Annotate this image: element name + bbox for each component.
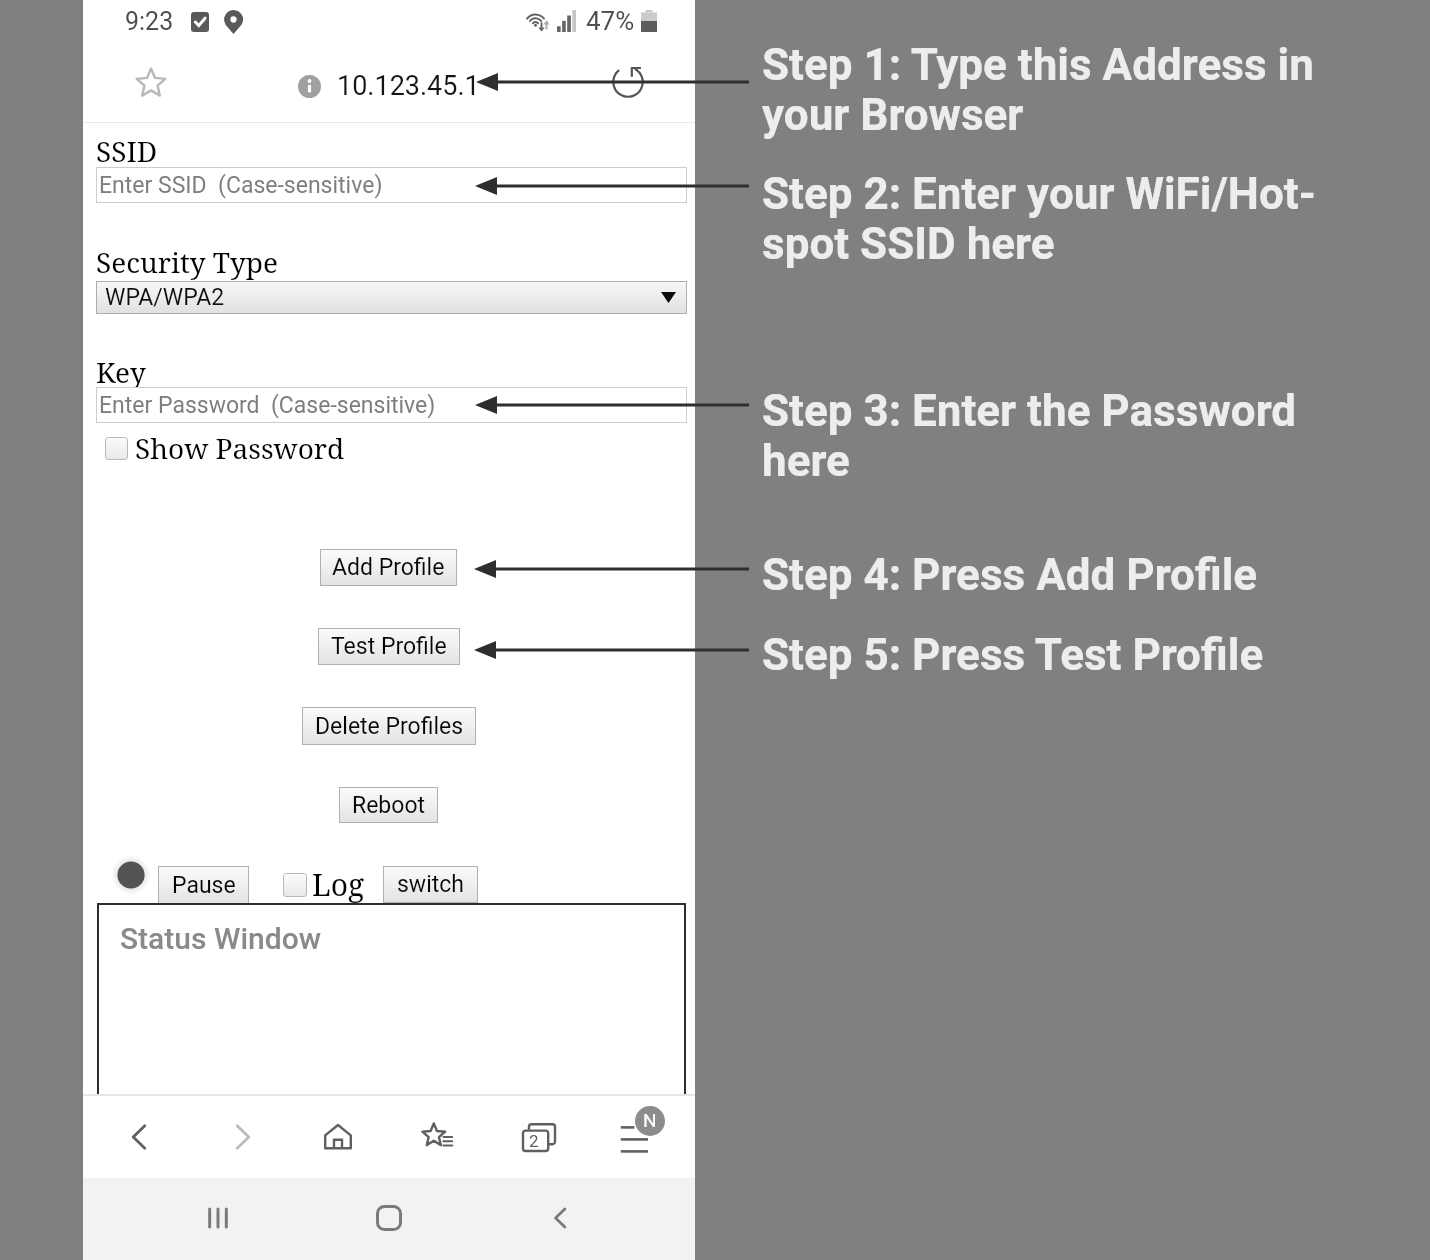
button[interactable]: Test Profile — [318, 628, 460, 665]
staticText: switch — [397, 871, 464, 898]
button[interactable]: Delete Profiles — [302, 707, 476, 745]
staticText: Add Profile — [332, 554, 445, 581]
button[interactable]: Bookmarks — [413, 1113, 461, 1161]
staticText: Reboot — [352, 792, 426, 819]
button[interactable]: Reboot — [339, 787, 438, 823]
staticText: Status Window — [120, 921, 322, 956]
button[interactable]: Enter SSID (Case-sensitive) — [96, 167, 687, 203]
staticText: Security Type — [96, 243, 279, 281]
staticText: Pause — [172, 872, 236, 899]
button[interactable]: Menu — [612, 1113, 660, 1161]
staticText: 10.123.45.1 — [337, 70, 480, 102]
staticText: 2 — [529, 1131, 539, 1151]
button[interactable]: Tabs — [513, 1113, 561, 1161]
staticText: Step 2: Enter your WiFi/Hot-spot SSID he… — [762, 168, 1362, 269]
button[interactable]: Security Type — [96, 281, 687, 314]
staticText: Delete Profiles — [315, 713, 464, 740]
staticText: Step 4: Press Add Profile — [762, 549, 1258, 601]
button[interactable]: Back — [537, 1194, 585, 1242]
button[interactable]: Add Profile — [320, 549, 457, 586]
button[interactable]: Forward — [218, 1113, 266, 1161]
staticText: Step 1: Type this Address in your Browse… — [762, 39, 1362, 140]
staticText: WPA/WPA2 — [105, 284, 225, 311]
button[interactable]: Pause — [158, 866, 249, 904]
staticText: Step 5: Press Test Profile — [762, 629, 1264, 681]
button[interactable]: Bookmark — [126, 57, 176, 107]
staticText: 47% — [586, 6, 635, 36]
button[interactable]: Recents — [194, 1194, 242, 1242]
button[interactable]: Home — [365, 1194, 413, 1242]
button[interactable]: Enter Password (Case-sensitive) — [96, 387, 687, 423]
button[interactable]: Back — [116, 1113, 164, 1161]
staticText: Log — [312, 864, 365, 905]
staticText: Enter Password (Case-sensitive) — [99, 392, 436, 419]
staticText: 9:23 — [125, 7, 174, 36]
staticText: Test Profile — [331, 633, 447, 660]
staticText: Key — [96, 353, 146, 391]
button[interactable]: switch — [383, 866, 478, 903]
staticText: Show Password — [135, 429, 345, 467]
staticText: N — [643, 1109, 657, 1131]
staticText: SSID — [96, 132, 158, 170]
staticText: Step 3: Enter the Password here — [762, 385, 1362, 486]
staticText: Enter SSID (Case-sensitive) — [99, 172, 383, 199]
button[interactable]: Reload — [603, 57, 653, 107]
button[interactable]: Show Password — [105, 429, 345, 467]
button[interactable]: Home — [314, 1113, 362, 1161]
button[interactable]: Log — [283, 864, 365, 905]
